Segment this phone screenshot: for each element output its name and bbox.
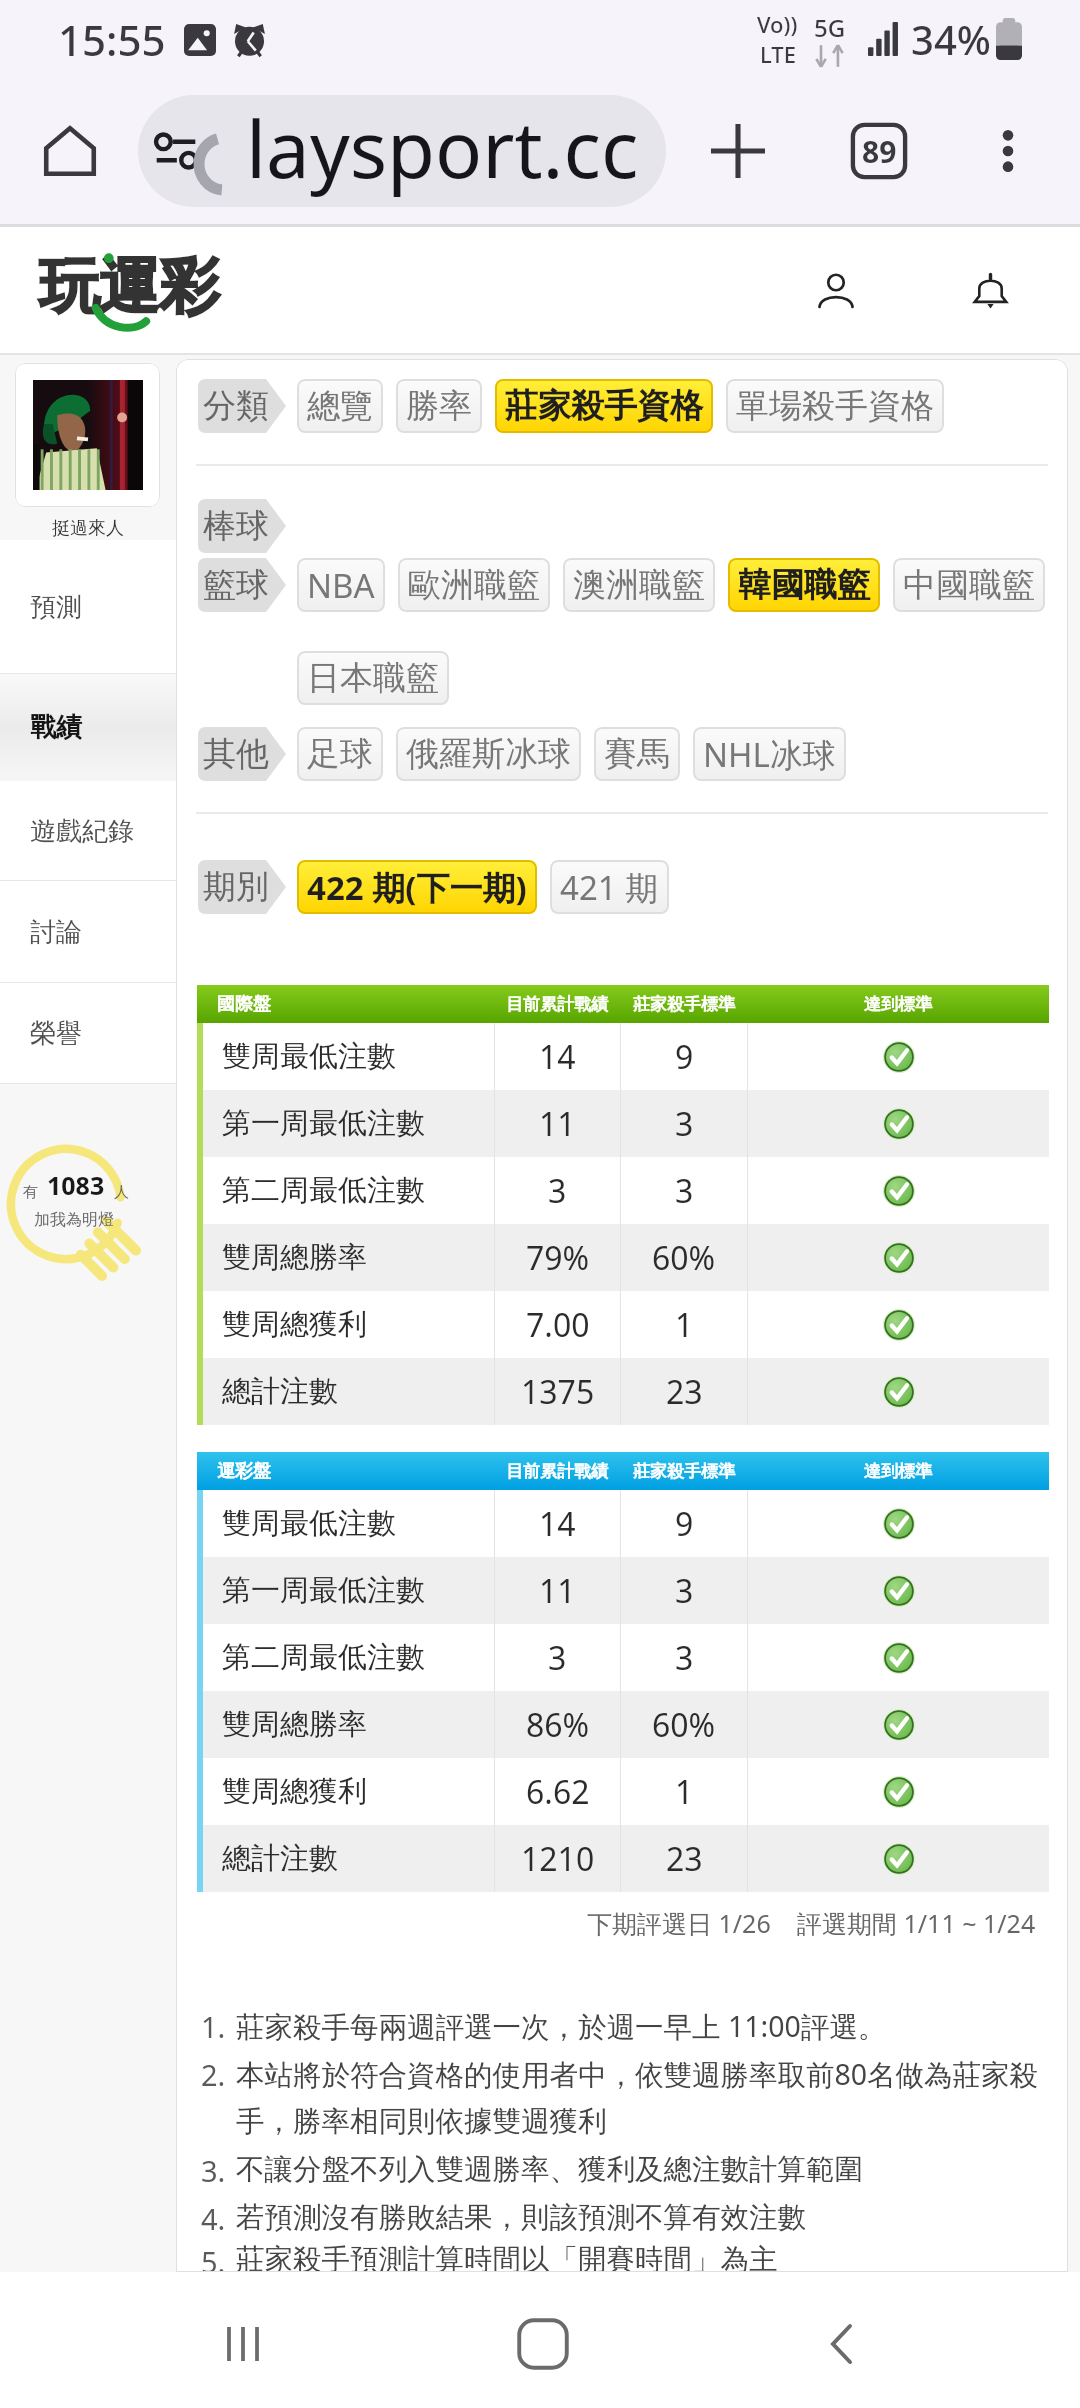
button[interactable]: 單場殺手資格 — [726, 379, 944, 433]
staticText: 棒球 — [203, 505, 269, 547]
button[interactable]: 榮譽 — [0, 983, 176, 1084]
staticText: 預測 — [30, 591, 82, 624]
staticText: 1. — [201, 2007, 226, 2046]
staticText: 莊家殺手資格 — [505, 385, 703, 427]
staticText: 總計注數 — [222, 1373, 338, 1410]
button[interactable]: Home — [28, 109, 112, 193]
staticText: 足球 — [307, 733, 373, 775]
staticText: 日本職籃 — [307, 657, 439, 699]
staticText: 目前累計戰績 — [506, 1461, 608, 1482]
button[interactable]: NBA — [297, 558, 385, 612]
staticText: 5G — [814, 11, 846, 44]
button[interactable]: 421 期 — [550, 860, 669, 914]
staticText: 422 期(下一期) — [307, 865, 527, 910]
staticText: LTE — [760, 39, 796, 69]
staticText: 遊戲紀錄 — [30, 815, 134, 848]
staticText: 籃球 — [203, 564, 269, 606]
staticText: 3 — [675, 1636, 694, 1680]
button[interactable]: 預測 — [0, 540, 176, 674]
button[interactable]: 賽馬 — [594, 727, 680, 781]
staticText: 421 期 — [560, 865, 659, 910]
staticText: 加我為明燈 — [34, 1210, 114, 1230]
staticText: 單場殺手資格 — [736, 385, 934, 427]
button[interactable]: Notifications — [950, 251, 1030, 331]
staticText: NBA — [307, 563, 375, 608]
staticText: 7.00 — [526, 1303, 590, 1347]
staticText: 莊家殺手標準 — [633, 994, 735, 1015]
staticText: 中國職籃 — [903, 564, 1035, 606]
staticText: 其他 — [203, 733, 269, 775]
button[interactable]: 日本職籃 — [297, 651, 449, 705]
staticText: 人 — [114, 1183, 129, 1202]
button[interactable]: Tabs — [837, 109, 921, 193]
staticText: 莊家殺手標準 — [633, 1461, 735, 1482]
staticText: 23 — [666, 1370, 703, 1414]
button[interactable]: laysport.cc — [138, 95, 666, 207]
button[interactable]: 422 期(下一期) — [297, 860, 537, 914]
staticText: 23 — [666, 1837, 703, 1881]
button[interactable]: More options — [971, 114, 1045, 188]
staticText: 俄羅斯冰球 — [406, 733, 571, 775]
staticText: 運彩盤 — [217, 1460, 271, 1483]
staticText: 9 — [675, 1502, 694, 1546]
staticText: 3 — [675, 1102, 694, 1146]
button[interactable]: 中國職籃 — [893, 558, 1045, 612]
staticText: 國際盤 — [217, 993, 271, 1016]
staticText: 勝率 — [406, 385, 472, 427]
button[interactable]: Account — [796, 251, 876, 331]
button[interactable]: 戰績 — [0, 674, 176, 781]
staticText: 雙周最低注數 — [222, 1038, 396, 1075]
staticText: 賽馬 — [604, 733, 670, 775]
staticText: 14 — [539, 1035, 576, 1079]
staticText: 總計注數 — [222, 1840, 338, 1877]
staticText: 1 — [675, 1303, 694, 1347]
staticText: 2. — [201, 2055, 226, 2094]
staticText: Vo)) — [757, 9, 798, 39]
staticText: 15:55 — [58, 11, 166, 68]
staticText: 11 — [539, 1569, 576, 1613]
button[interactable]: Recents — [183, 2284, 303, 2404]
staticText: 達到標準 — [864, 994, 932, 1015]
button[interactable] — [15, 363, 160, 507]
button[interactable]: 韓國職籃 — [728, 558, 880, 612]
button[interactable]: Home — [483, 2284, 603, 2404]
staticText: 評選期間 1/11 ~ 1/24 — [797, 1906, 1036, 1940]
staticText: 60% — [652, 1703, 716, 1747]
staticText: 1 — [675, 1770, 694, 1814]
staticText: 討論 — [30, 916, 82, 949]
staticText: 第一周最低注數 — [222, 1105, 425, 1142]
button[interactable]: Back — [783, 2284, 903, 2404]
button[interactable]: 歐洲職籃 — [398, 558, 550, 612]
staticText: 3 — [675, 1569, 694, 1613]
staticText: 玩運彩 — [39, 249, 219, 325]
staticText: 第二周最低注數 — [222, 1172, 425, 1209]
staticText: 第二周最低注數 — [222, 1639, 425, 1676]
button[interactable]: 討論 — [0, 881, 176, 983]
staticText: NHL冰球 — [703, 732, 836, 777]
button[interactable]: 莊家殺手資格 — [495, 379, 713, 433]
staticText: 歐洲職籃 — [408, 564, 540, 606]
button[interactable]: 澳洲職籃 — [563, 558, 715, 612]
staticText: 澳洲職籃 — [573, 564, 705, 606]
staticText: 第一周最低注數 — [222, 1572, 425, 1609]
button[interactable]: New tab — [696, 109, 780, 193]
button[interactable]: 勝率 — [396, 379, 482, 433]
button[interactable]: 遊戲紀錄 — [0, 781, 176, 881]
button[interactable]: NHL冰球 — [693, 727, 846, 781]
staticText: laysport.cc — [246, 95, 639, 201]
staticText: 3 — [548, 1636, 567, 1680]
staticText: 4. — [201, 2199, 226, 2238]
staticText: 本站將於符合資格的使用者中，依雙週勝率取前80名做為莊家殺 — [236, 2055, 1039, 2094]
button[interactable]: 總覽 — [297, 379, 383, 433]
staticText: 期別 — [203, 866, 269, 908]
button[interactable]: 足球 — [297, 727, 383, 781]
staticText: 79% — [526, 1236, 590, 1280]
staticText: 總覽 — [307, 385, 373, 427]
staticText: 雙周總獲利 — [222, 1773, 367, 1810]
staticText: 韓國職籃 — [738, 564, 870, 606]
staticText: 有 — [23, 1183, 38, 1202]
staticText: 雙周總勝率 — [222, 1239, 367, 1276]
staticText: 若預測沒有勝敗結果，則該預測不算有效注數 — [236, 2200, 806, 2236]
staticText: 60% — [652, 1236, 716, 1280]
button[interactable]: 俄羅斯冰球 — [396, 727, 581, 781]
